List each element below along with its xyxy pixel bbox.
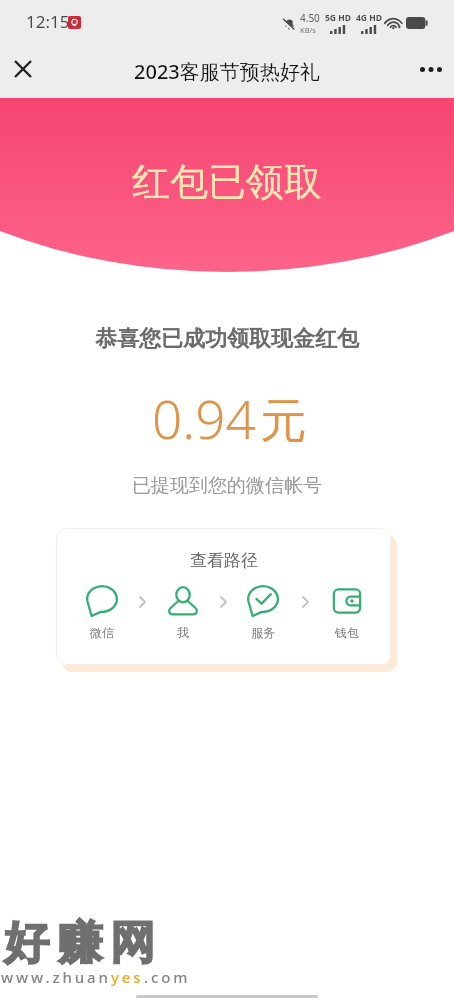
staticText: 2023客服节预热好礼 (134, 58, 320, 85)
staticText: 恭喜您已成功领取现金红包 (0, 325, 454, 353)
staticText: 4.50 (300, 11, 320, 25)
staticText: 4G HD (356, 12, 382, 24)
staticText: 服务 (251, 625, 275, 640)
staticText: KB/s (300, 25, 316, 35)
staticText: 微信 (90, 625, 114, 640)
staticText: 0.94 (152, 382, 256, 454)
staticText: 12:15 (26, 10, 70, 33)
button[interactable]: 查看路径 (56, 528, 391, 665)
staticText: 钱包 (335, 625, 359, 640)
staticText: 元 (260, 392, 307, 451)
staticText: 查看路径 (190, 550, 258, 571)
button[interactable]: Close (1, 47, 45, 91)
staticText: yes (111, 967, 144, 987)
staticText: 红包已领取 (132, 158, 322, 206)
staticText: 好赚网 (0, 915, 159, 972)
staticText: 已提现到您的微信帐号 (0, 474, 454, 498)
staticText: .com (144, 967, 191, 987)
staticText: www.zhuan (1, 967, 111, 987)
staticText: 5G HD (325, 12, 351, 24)
staticText: 我 (177, 625, 189, 640)
button[interactable]: More options (409, 47, 453, 91)
